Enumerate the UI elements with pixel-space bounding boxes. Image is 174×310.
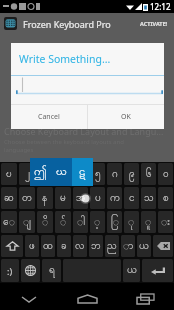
button[interactable]: လ [73, 235, 87, 257]
button[interactable]: ခ [57, 235, 71, 257]
button[interactable]: အ [73, 187, 88, 209]
button[interactable]: း [158, 211, 173, 233]
button[interactable]: သ [141, 187, 156, 209]
button[interactable]: ဂ [107, 163, 122, 185]
staticText: း [161, 215, 170, 230]
button[interactable]: Language [21, 259, 40, 282]
button[interactable]: ဧ [55, 163, 71, 185]
button[interactable]: OK [88, 105, 164, 129]
button[interactable]: Enter [142, 259, 173, 282]
button[interactable]: ဖ [25, 235, 39, 257]
button[interactable]: ြ [107, 211, 122, 233]
button[interactable]: ၉ [124, 163, 139, 185]
staticText: ၅ [95, 167, 101, 182]
staticText: ယ [139, 239, 149, 254]
staticText: ဗ [78, 167, 84, 182]
staticText: Frozen Keyboard Pro [23, 18, 111, 30]
staticText: စ [163, 191, 169, 206]
button[interactable]: ဆ [1, 187, 17, 209]
staticText: သ [144, 191, 154, 206]
staticText: မ [60, 191, 66, 206]
staticText: ဃ [56, 164, 67, 180]
staticText: 12:12 [150, 1, 171, 12]
staticText: ယ [127, 263, 137, 278]
button[interactable]: ယ [137, 235, 151, 257]
button[interactable]: ၆ [141, 163, 156, 185]
staticText: :) [7, 265, 13, 277]
button[interactable]: ူ [141, 211, 156, 233]
staticText: ပ [95, 191, 101, 206]
button[interactable]: :) [1, 259, 19, 282]
button[interactable]: ု [124, 211, 139, 233]
staticText: ၆ [146, 167, 152, 182]
button[interactable]: ၅ [90, 163, 105, 185]
staticText: ဘ [91, 239, 101, 254]
button[interactable]: ဗ [73, 163, 88, 185]
staticText: ့ [94, 215, 101, 230]
button[interactable]: ါ [73, 211, 88, 233]
button[interactable]: မ [55, 187, 71, 209]
button[interactable]: ၂ [19, 163, 35, 185]
button[interactable]: က [107, 187, 122, 209]
staticText: Choose Keyboard Layout and Langu… [4, 125, 164, 137]
staticText: ၉ [129, 167, 135, 182]
button[interactable]: Cancel [11, 105, 87, 129]
button[interactable]: ည [105, 235, 119, 257]
staticText: ာ [123, 239, 134, 254]
button[interactable]: Home [58, 283, 116, 310]
staticText: ု [128, 215, 135, 230]
button[interactable]: တ [19, 187, 35, 209]
button[interactable]: စ [158, 187, 173, 209]
button[interactable]: Back [0, 283, 58, 310]
staticText: င [129, 191, 135, 206]
staticText: ည [107, 239, 117, 254]
button[interactable]: ACTIVATE! [138, 17, 170, 30]
staticText: တ [22, 191, 32, 206]
button[interactable]: ဎ [1, 163, 17, 185]
staticText: ဧ [60, 167, 66, 182]
staticText: Cancel [38, 112, 60, 122]
button[interactable]: ဤ [37, 163, 53, 185]
button[interactable]: Backspace [153, 235, 173, 257]
staticText: ဤ [34, 164, 47, 180]
button[interactable]: ေ [1, 211, 17, 233]
button[interactable]: ပ [90, 187, 105, 209]
other: Shift [7, 241, 18, 251]
button[interactable]: ် [55, 211, 71, 233]
staticText: ၂ [25, 167, 30, 182]
button[interactable]: ရ [42, 259, 61, 282]
button[interactable]: ဋ [72, 158, 93, 186]
staticText: ူ [145, 215, 152, 230]
staticText: အ [76, 191, 86, 206]
button[interactable]: င [124, 187, 139, 209]
staticText: ဂ [112, 167, 118, 182]
button[interactable]: ဤ [30, 158, 51, 186]
button[interactable]: န [37, 187, 53, 209]
other: Backspace [157, 242, 170, 250]
button[interactable]: Recents [116, 283, 174, 310]
staticText: ဎ [6, 167, 12, 182]
staticText: ါ [77, 215, 85, 230]
staticText: ဋ [79, 164, 86, 180]
button[interactable]: ျ [19, 211, 35, 233]
other: Enter [151, 266, 165, 276]
button[interactable]: ၀ [158, 163, 173, 185]
staticText: ် [60, 215, 67, 230]
button[interactable]: ာ [121, 235, 135, 257]
button[interactable]: ယ [123, 259, 140, 282]
button[interactable]: Shift [1, 235, 23, 257]
button[interactable]: ဃ [51, 158, 72, 186]
staticText: ရ [49, 263, 55, 278]
button[interactable]: ထ [41, 235, 55, 257]
button[interactable]: ဘ [89, 235, 103, 257]
staticText: ိ [42, 215, 49, 230]
staticText: ACTIVATE! [140, 20, 168, 27]
staticText: ဤ [39, 167, 51, 182]
staticText: လ [75, 239, 85, 254]
staticText: Write Something... [19, 52, 111, 66]
button[interactable]: ိ [37, 211, 53, 233]
button[interactable]: ့ [90, 211, 105, 233]
staticText: ျ [23, 215, 31, 230]
